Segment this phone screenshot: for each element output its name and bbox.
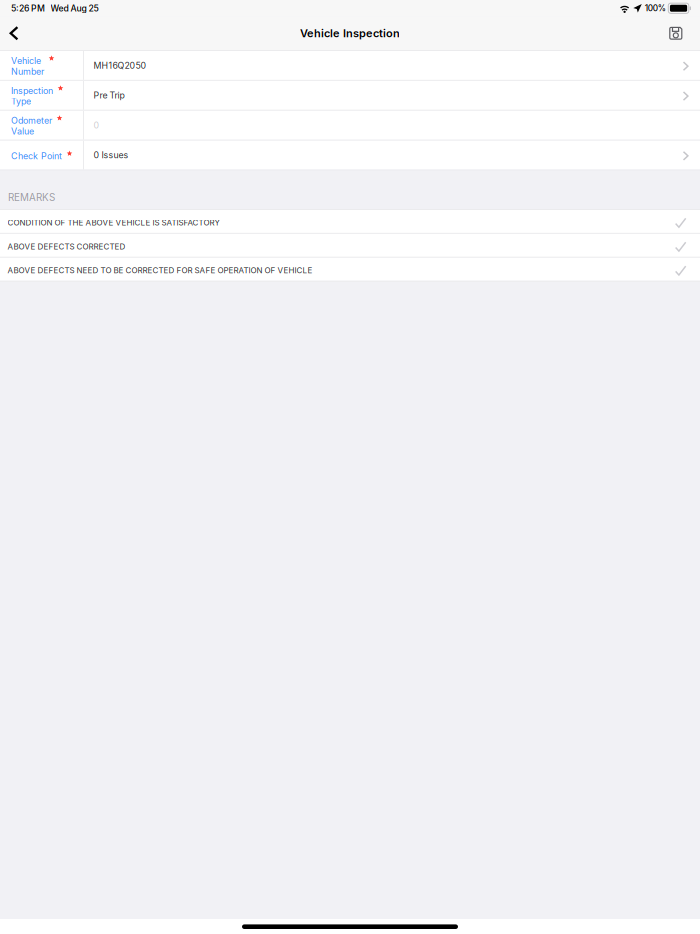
button[interactable]: Save (652, 18, 700, 48)
staticText: REMARKS (8, 192, 55, 203)
staticText: Value (11, 126, 34, 137)
staticText: Odometer (11, 115, 52, 126)
staticText: CONDITION OF THE ABOVE VEHICLE IS SATISF… (8, 218, 220, 227)
button[interactable]: Odometer (0, 111, 700, 140)
button[interactable]: Inspection (0, 81, 700, 110)
button[interactable]: ABOVE DEFECTS CORRECTED (0, 234, 700, 257)
button[interactable]: CONDITION OF THE ABOVE VEHICLE IS SATISF… (0, 210, 700, 233)
staticText: Number (11, 66, 44, 77)
button[interactable]: ABOVE DEFECTS NEED TO BE CORRECTED FOR S… (0, 258, 700, 281)
staticText: 100% (645, 3, 666, 13)
staticText: ABOVE DEFECTS NEED TO BE CORRECTED FOR S… (8, 266, 313, 275)
staticText: Wed Aug 25 (50, 3, 98, 13)
button[interactable]: Back (0, 18, 39, 48)
staticText: Type (11, 96, 31, 107)
button[interactable]: Check Point (0, 141, 700, 170)
button[interactable]: Vehicle (0, 51, 700, 80)
staticText: Inspection (11, 85, 53, 96)
staticText: Check Point (11, 150, 62, 161)
staticText: Pre Trip (93, 90, 124, 101)
staticText: Vehicle (11, 55, 41, 66)
staticText: Vehicle Inspection (300, 27, 400, 40)
staticText: 5:26 PM (11, 3, 45, 13)
staticText: 0 Issues (93, 150, 128, 160)
staticText: ABOVE DEFECTS CORRECTED (8, 242, 126, 251)
staticText: MH16Q2050 (93, 60, 146, 71)
staticText: 0 (93, 120, 99, 130)
